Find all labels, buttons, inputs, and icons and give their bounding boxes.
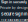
staticText: Private by design <box>0 6 28 10</box>
staticText: Sign in securely <box>1 0 27 4</box>
staticText: Secure sign in <box>1 12 27 16</box>
staticText: Your data stays private <box>0 19 27 22</box>
